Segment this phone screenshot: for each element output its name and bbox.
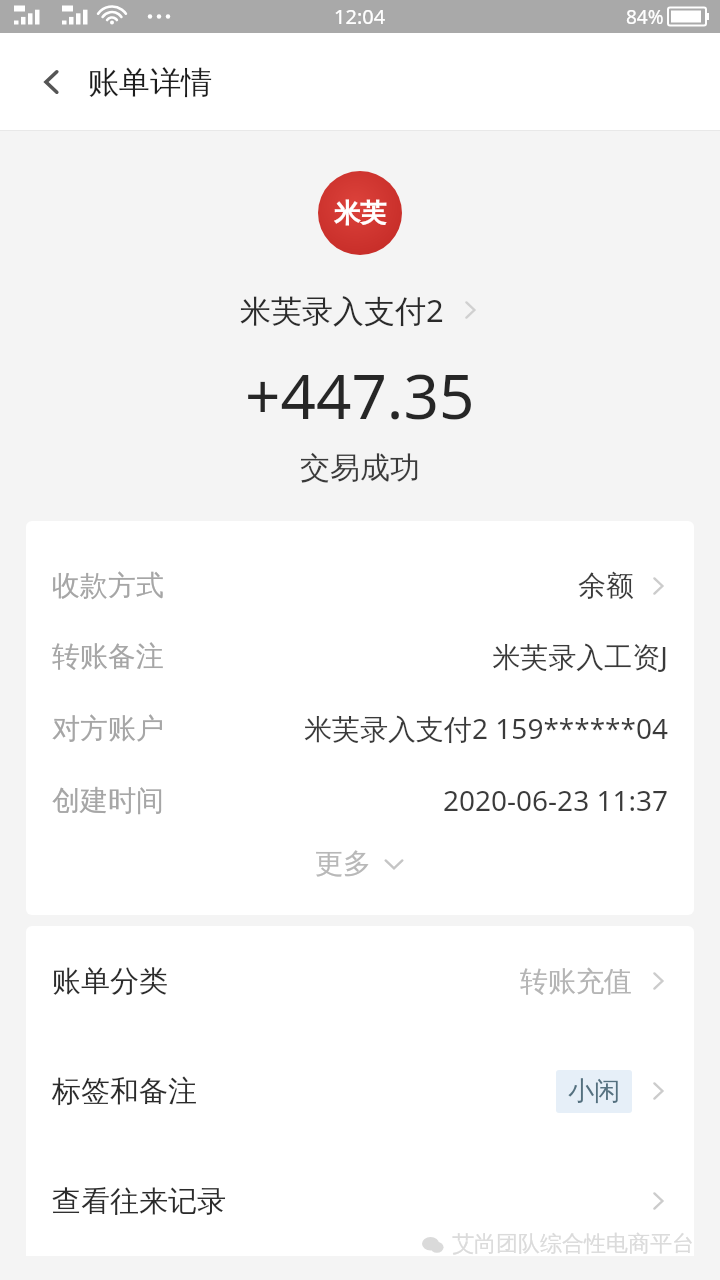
- button[interactable]: 账单分类: [52, 926, 668, 1036]
- staticText: 标签和备注: [52, 1073, 197, 1110]
- staticText: 米芙: [334, 197, 386, 230]
- staticText: 更多: [315, 846, 371, 881]
- staticText: +447.35: [245, 353, 475, 437]
- button[interactable]: 对方账户: [52, 692, 668, 764]
- button[interactable]: 创建时间: [52, 764, 668, 836]
- staticText: 12:04: [334, 3, 386, 30]
- staticText: 艾尚团队综合性电商平台: [452, 1230, 694, 1258]
- staticText: 小闲: [568, 1075, 620, 1108]
- staticText: 查看往来记录: [52, 1183, 226, 1220]
- staticText: 收款方式: [52, 568, 164, 603]
- button[interactable]: Back: [26, 56, 78, 108]
- staticText: 2020-06-23 11:37: [442, 781, 668, 819]
- staticText: 米芙录入支付2 159******04: [304, 709, 668, 747]
- button[interactable]: 米芙录入支付2: [232, 285, 488, 335]
- button[interactable]: 标签和备注: [52, 1036, 668, 1146]
- button[interactable]: 更多: [52, 836, 668, 915]
- button[interactable]: 查看往来记录: [52, 1146, 668, 1256]
- button[interactable]: 收款方式: [52, 551, 668, 620]
- staticText: 转账备注: [52, 639, 164, 674]
- staticText: 账单分类: [52, 963, 168, 1000]
- staticText: 余额: [578, 568, 634, 603]
- staticText: 米芙录入工资J: [492, 637, 668, 675]
- staticText: 交易成功: [300, 449, 420, 487]
- button[interactable]: 转账备注: [52, 620, 668, 692]
- staticText: 84%: [626, 4, 664, 30]
- staticText: 创建时间: [52, 783, 164, 818]
- staticText: 米芙录入支付2: [240, 289, 444, 331]
- staticText: 对方账户: [52, 711, 164, 746]
- staticText: 转账充值: [520, 964, 632, 999]
- staticText: 账单详情: [88, 63, 212, 102]
